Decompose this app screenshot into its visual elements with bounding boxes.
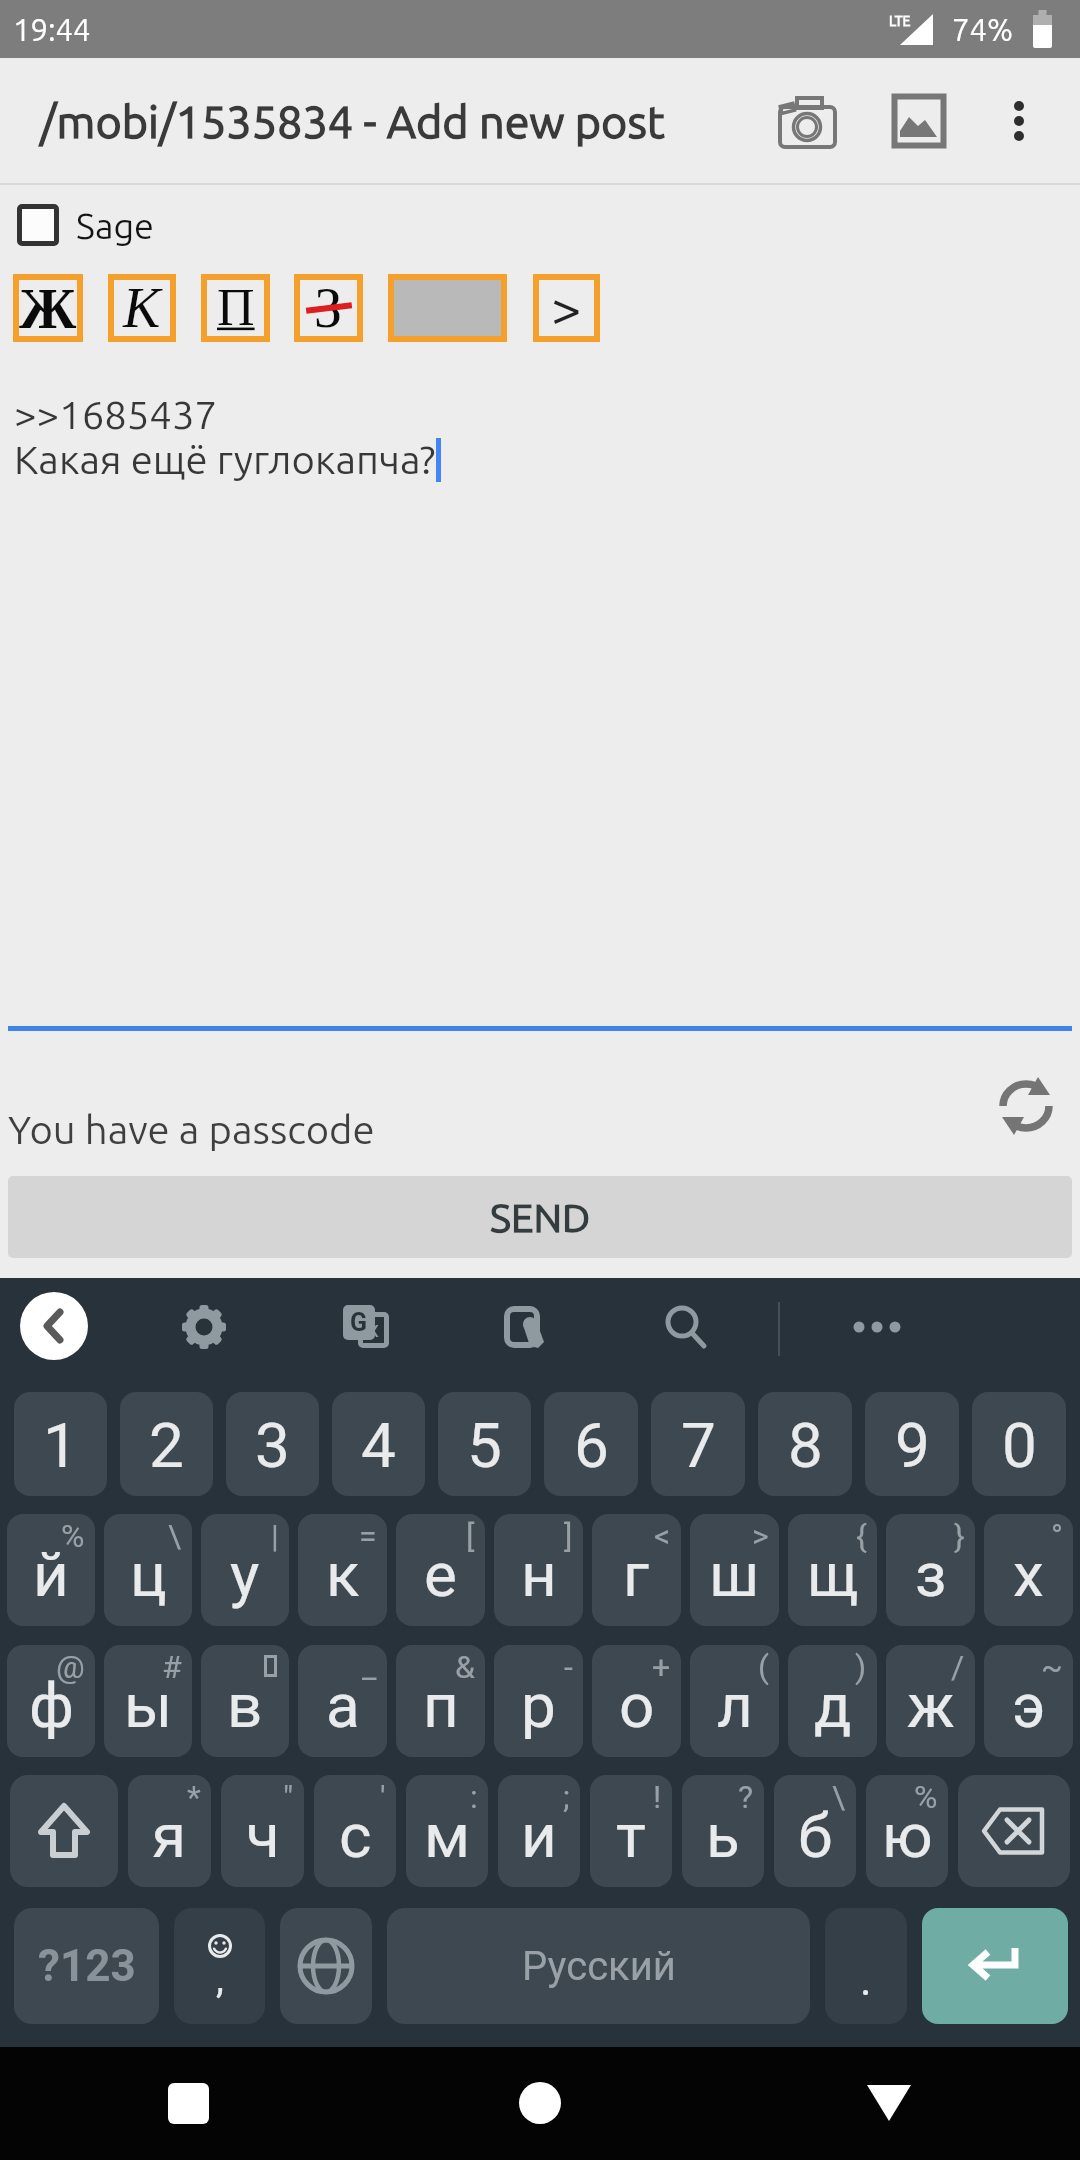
button[interactable]: К — [108, 274, 176, 342]
button[interactable]: э — [984, 1645, 1073, 1757]
button[interactable]: > — [533, 274, 600, 342]
button[interactable]: 0 — [972, 1392, 1066, 1496]
staticText: x — [368, 1317, 379, 1343]
button[interactable]: 7 — [651, 1392, 745, 1496]
button[interactable]: м — [406, 1775, 488, 1887]
button[interactable]: 2 — [120, 1392, 213, 1496]
staticText: 3 — [255, 1409, 290, 1482]
staticText: * — [187, 1778, 201, 1816]
button[interactable]: , — [174, 1908, 265, 2024]
staticText: г — [623, 1538, 650, 1611]
staticText: /mobi/1535834 - Add new post — [40, 96, 665, 146]
button[interactable] — [853, 1321, 901, 1333]
staticText: " — [283, 1778, 294, 1816]
button[interactable]: . — [825, 1908, 907, 2024]
button[interactable]: ф — [7, 1645, 95, 1757]
button[interactable]: 9 — [865, 1392, 959, 1496]
button[interactable] — [664, 1306, 708, 1350]
button[interactable]: П — [201, 274, 270, 342]
button[interactable]: ?123 — [14, 1908, 159, 2024]
button[interactable]: к — [298, 1514, 387, 1626]
button[interactable]: SEND — [8, 1176, 1072, 1258]
staticText: 6 — [574, 1409, 609, 1482]
staticText: { — [856, 1517, 867, 1555]
button[interactable]: а — [298, 1645, 387, 1757]
button[interactable]: и — [498, 1775, 580, 1887]
button[interactable]: с — [314, 1775, 396, 1887]
button[interactable] — [998, 1077, 1054, 1135]
button[interactable] — [182, 1305, 226, 1349]
button[interactable]: 5 — [438, 1392, 531, 1496]
staticText: < — [654, 1517, 671, 1555]
button[interactable]: Ж — [13, 274, 83, 342]
staticText: п — [423, 1669, 459, 1742]
staticText: % — [61, 1517, 85, 1555]
button[interactable] — [922, 1908, 1068, 2024]
button[interactable]: п — [396, 1645, 485, 1757]
staticText: П — [217, 279, 255, 337]
staticText: ~ — [1041, 1648, 1063, 1686]
button[interactable] — [519, 2082, 561, 2124]
staticText: ы — [124, 1669, 173, 1742]
button[interactable]: 1 — [14, 1392, 107, 1496]
button[interactable]: в — [201, 1645, 289, 1757]
button[interactable]: б — [774, 1775, 856, 1887]
staticText: й — [33, 1538, 69, 1611]
staticText: G — [350, 1308, 368, 1337]
button[interactable]: я — [128, 1775, 211, 1887]
button[interactable]: 8 — [758, 1392, 852, 1496]
button[interactable]: й — [7, 1514, 95, 1626]
button[interactable]: x — [343, 1305, 389, 1349]
button[interactable]: ы — [104, 1645, 192, 1757]
button[interactable]: Русский — [387, 1908, 810, 2024]
button[interactable]: ж — [886, 1645, 975, 1757]
button[interactable] — [280, 1908, 372, 2024]
button[interactable]: з — [886, 1514, 975, 1626]
button[interactable]: г — [592, 1514, 681, 1626]
button[interactable]: н — [494, 1514, 583, 1626]
staticText: е — [424, 1538, 457, 1611]
staticText: = — [359, 1517, 377, 1555]
staticText: 9 — [895, 1409, 930, 1482]
button[interactable]: е — [396, 1514, 485, 1626]
button[interactable]: З — [294, 274, 363, 342]
button[interactable]: ц — [104, 1514, 192, 1626]
button[interactable]: щ — [788, 1514, 877, 1626]
staticText: > — [551, 278, 582, 339]
button[interactable]: д — [788, 1645, 877, 1757]
button[interactable] — [958, 1775, 1070, 1887]
staticText: . — [860, 1954, 872, 2006]
staticText: н — [521, 1538, 557, 1611]
staticText: с — [339, 1799, 372, 1872]
button[interactable]: 3 — [226, 1392, 319, 1496]
staticText: Русский — [522, 1943, 676, 1990]
button[interactable]: л — [690, 1645, 779, 1757]
staticText: я — [152, 1799, 187, 1872]
staticText: Sage — [76, 205, 154, 245]
button[interactable] — [1002, 94, 1036, 148]
button[interactable] — [10, 1775, 118, 1887]
button[interactable]: ш — [690, 1514, 779, 1626]
button[interactable]: ю — [866, 1775, 948, 1887]
staticText: и — [521, 1799, 557, 1872]
staticText: \ — [832, 1778, 846, 1816]
staticText: ? — [738, 1778, 754, 1816]
button[interactable]: о — [592, 1645, 681, 1757]
button[interactable]: Sage — [17, 204, 154, 246]
button[interactable] — [892, 94, 946, 148]
button[interactable]: т — [590, 1775, 672, 1887]
button[interactable] — [778, 94, 842, 148]
button[interactable]: 4 — [332, 1392, 425, 1496]
staticText: ц — [130, 1538, 167, 1611]
button[interactable]: у — [201, 1514, 289, 1626]
button[interactable] — [168, 2083, 209, 2124]
button[interactable] — [506, 1306, 548, 1348]
button[interactable]: х — [984, 1514, 1073, 1626]
button[interactable] — [388, 274, 507, 342]
button[interactable]: р — [494, 1645, 583, 1757]
button[interactable] — [20, 1292, 88, 1360]
button[interactable]: ь — [682, 1775, 764, 1887]
button[interactable]: ч — [221, 1775, 304, 1887]
button[interactable]: 6 — [544, 1392, 638, 1496]
button[interactable] — [866, 2084, 912, 2122]
